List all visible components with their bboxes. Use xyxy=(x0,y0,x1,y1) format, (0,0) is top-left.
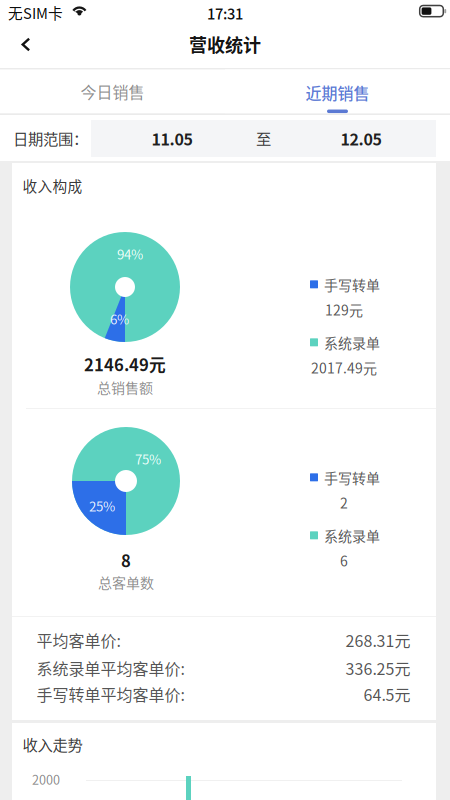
staticText: 75% xyxy=(135,449,161,468)
staticText: 2000 xyxy=(32,770,60,788)
staticText: 268.31元 xyxy=(346,628,411,652)
staticText: 336.25元 xyxy=(346,656,411,680)
staticText: 12.05 xyxy=(340,127,381,150)
staticText: 手写转单 xyxy=(324,467,380,488)
staticText: 手写转单平均客单价: xyxy=(37,682,185,706)
staticText: 总销售额 xyxy=(97,377,153,397)
staticText: 系统录单 xyxy=(324,525,380,546)
staticText: 94% xyxy=(117,244,143,263)
staticText: 11.05 xyxy=(151,127,192,150)
button[interactable]: 返回 xyxy=(4,23,48,65)
staticText: 系统录单平均客单价: xyxy=(37,656,185,680)
staticText: 2017.49元 xyxy=(311,357,377,378)
staticText: 64.5元 xyxy=(364,682,411,706)
button[interactable]: 近期销售 xyxy=(225,69,450,113)
staticText: 6 xyxy=(340,550,348,571)
staticText: 6% xyxy=(110,309,129,328)
staticText: 日期范围： xyxy=(13,127,88,149)
button[interactable]: 11.05 xyxy=(92,120,252,157)
staticText: 17:31 xyxy=(207,2,243,24)
staticText: 总客单数 xyxy=(98,572,154,592)
staticText: 25% xyxy=(89,496,115,515)
staticText: 2146.49元 xyxy=(84,352,166,376)
staticText: 无SIM卡 xyxy=(8,2,63,23)
staticText: 系统录单 xyxy=(324,332,380,353)
staticText: 平均客单价: xyxy=(37,628,121,652)
staticText: 129元 xyxy=(325,299,363,320)
staticText: 收入走势 xyxy=(22,733,82,755)
button[interactable]: 今日销售 xyxy=(0,69,225,113)
staticText: 至 xyxy=(256,127,271,149)
staticText: 今日销售 xyxy=(80,80,144,103)
staticText: 手写转单 xyxy=(324,274,380,295)
staticText: 2 xyxy=(340,492,348,513)
staticText: 近期销售 xyxy=(305,81,369,104)
staticText: 8 xyxy=(121,548,131,572)
staticText: 收入构成 xyxy=(22,175,82,196)
staticText: 营收统计 xyxy=(189,31,261,57)
button[interactable]: 12.05 xyxy=(286,120,436,157)
